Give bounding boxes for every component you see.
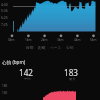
staticText: 3km (57, 38, 64, 42)
staticText: 0km (8, 38, 15, 42)
button[interactable]: 距離 (38, 45, 46, 50)
staticText: 140 (2, 91, 8, 95)
staticText: 183 (64, 67, 79, 78)
staticText: 距離 (38, 45, 46, 50)
staticText: 7:25 (1, 22, 8, 27)
staticText: 5:36 (1, 8, 8, 13)
staticText: 平均 (24, 77, 31, 81)
staticText: 心拍 (66, 45, 74, 50)
staticText: 5km (90, 38, 97, 42)
staticText: 180 (2, 84, 8, 88)
staticText: ペース (50, 45, 62, 50)
button[interactable]: ペース (50, 45, 62, 50)
button[interactable]: 時間 (26, 45, 34, 50)
staticText: 1km (25, 38, 32, 42)
staticText: 時間 (26, 45, 34, 50)
staticText: 最大 (69, 77, 76, 81)
staticText: 2km (41, 38, 48, 42)
staticText: 心拍 (bpm) (2, 59, 26, 65)
button[interactable]: 心拍 (66, 45, 74, 50)
staticText: 142 (19, 67, 34, 78)
staticText: 6:25 (1, 15, 8, 20)
staticText: 4:40 (1, 2, 8, 7)
staticText: 4km (74, 38, 81, 42)
